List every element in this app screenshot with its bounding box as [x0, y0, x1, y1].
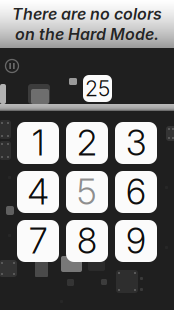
staticText: 7	[29, 220, 47, 262]
staticText: 1	[32, 122, 44, 164]
button[interactable]: 25	[83, 75, 112, 102]
staticText: 5	[77, 171, 97, 213]
staticText: 3	[126, 122, 146, 164]
staticText: 25	[85, 76, 110, 101]
button[interactable]: Pause	[2, 56, 22, 76]
button[interactable]: 2	[66, 122, 108, 164]
staticText: 9	[126, 220, 146, 262]
button[interactable]: 5	[66, 171, 108, 213]
staticText: on the Hard Mode.	[15, 24, 159, 44]
button[interactable]: 7	[17, 220, 59, 262]
staticText: 8	[77, 220, 97, 262]
button[interactable]: 3	[115, 122, 157, 164]
staticText: 4	[27, 171, 48, 213]
button[interactable]: 4	[17, 171, 59, 213]
button[interactable]: 1	[17, 122, 59, 164]
button[interactable]: 6	[115, 171, 157, 213]
staticText: There are no colors	[12, 4, 162, 23]
button[interactable]: 8	[66, 220, 108, 262]
button[interactable]: 9	[115, 220, 157, 262]
staticText: 2	[77, 122, 97, 164]
staticText: 6	[126, 171, 146, 213]
